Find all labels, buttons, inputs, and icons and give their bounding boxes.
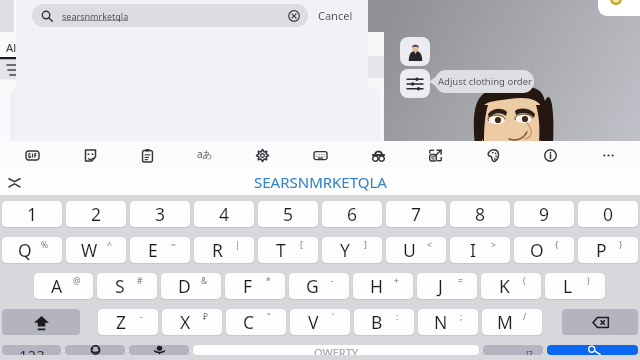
button[interactable]: P [578,237,638,263]
button[interactable]: Shift [2,309,80,335]
staticText: ~ [171,239,176,251]
button[interactable]: Resize [425,145,445,165]
staticText: SEARSNMRKETQLA [254,172,387,192]
button[interactable]: Clear [288,10,300,22]
button[interactable]: R [194,237,254,263]
button[interactable]: Z [98,309,158,335]
button[interactable]: More [598,145,618,165]
staticText: ; [460,311,463,323]
staticText: } [619,239,623,251]
staticText: Y [340,238,350,262]
button[interactable]: Avatar preview [400,37,430,66]
button[interactable]: searsnmrketqla [32,4,308,27]
button[interactable]: X [162,309,222,335]
staticText: " [267,311,271,323]
button[interactable]: Y [322,237,382,263]
button[interactable]: Collapse [4,172,24,192]
staticText: ^ [107,239,112,251]
button[interactable]: A [34,273,93,299]
staticText: 3 [155,202,166,226]
staticText: & [201,275,208,287]
staticText: 2 [91,202,102,226]
button[interactable]: 8 [450,201,510,227]
staticText: P [596,238,607,262]
button[interactable]: QWERTY [193,345,479,355]
button[interactable]: H [353,273,413,299]
button[interactable]: U [386,237,446,263]
staticText: @ [73,275,81,287]
staticText: C [243,310,255,334]
button[interactable]: N [418,309,478,335]
button[interactable]: F [225,273,285,299]
staticText: T [276,238,286,262]
staticText: H [370,274,383,298]
button[interactable]: M [482,309,542,335]
button[interactable]: Clipboard [137,145,157,165]
button[interactable]: Info [540,145,560,165]
button[interactable]: Keyboard mode [310,145,330,165]
staticText: U [403,238,416,262]
button[interactable]: S [97,273,157,299]
staticText: Q [18,238,32,262]
button[interactable]: B [354,309,414,335]
button[interactable]: GIF [22,145,42,165]
staticText: B [371,310,383,334]
staticText: 123 [19,345,45,355]
staticText: 7 [411,202,422,226]
staticText: I [470,238,476,262]
button[interactable]: SEARSNMRKETQLA [254,172,387,192]
button[interactable]: W [66,237,126,263]
staticText: !? [526,348,533,355]
staticText: * [266,275,271,287]
button[interactable]: 4 [194,201,254,227]
staticText: aあ [197,147,213,161]
button[interactable]: L [545,273,605,299]
button[interactable]: 2 [66,201,126,227]
staticText: W [81,238,98,262]
button[interactable]: Backspace [562,309,638,335]
button[interactable]: J [417,273,477,299]
button[interactable]: I [450,237,510,263]
button[interactable]: Translate [195,145,215,165]
button[interactable]: Cancel [318,8,353,23]
button[interactable]: O [514,237,574,263]
button[interactable]: V [290,309,350,335]
staticText: K [499,274,510,298]
button[interactable]: Q [2,237,62,263]
button[interactable]: 0 [578,201,638,227]
staticText: 6 [347,202,358,226]
button[interactable]: Stickers [80,145,100,165]
staticText: 5 [283,202,294,226]
button[interactable]: G [289,273,349,299]
button[interactable]: Adjust clothing order [400,69,430,98]
button[interactable]: Incognito [368,145,388,165]
button[interactable]: 7 [386,201,446,227]
button[interactable]: C [226,309,286,335]
button[interactable]: D [161,273,221,299]
button[interactable]: 3 [130,201,190,227]
staticText: E [148,238,158,262]
button[interactable]: Search [547,345,638,355]
button[interactable]: E [130,237,190,263]
staticText: Al [6,40,17,55]
button[interactable]: Voice input [129,345,189,355]
staticText: ] [364,239,367,251]
button[interactable]: K [481,273,541,299]
staticText: ₽ [203,311,208,323]
button[interactable]: 123 [2,345,61,355]
staticText: S [115,274,125,298]
staticText: : [396,311,399,323]
button[interactable]: Settings [252,145,272,165]
staticText: - [331,275,334,287]
button[interactable]: 5 [258,201,318,227]
button[interactable]: Theme [483,145,503,165]
button[interactable]: 9 [514,201,574,227]
staticText: A [51,274,63,298]
button[interactable]: !? [483,345,543,355]
button[interactable]: 1 [2,201,62,227]
button[interactable]: 6 [322,201,382,227]
button[interactable]: T [258,237,318,263]
staticText: ' [332,311,334,323]
button[interactable]: Emoji [65,345,125,355]
staticText: G [306,274,319,298]
